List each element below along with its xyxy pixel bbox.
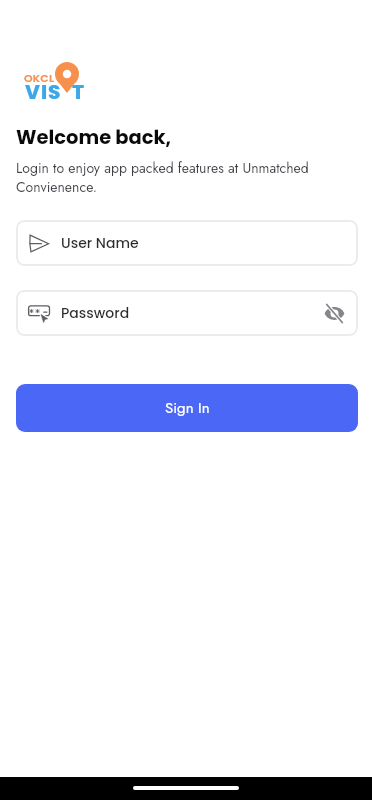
button[interactable]: Show password <box>322 301 346 325</box>
staticText: VIS <box>25 78 62 106</box>
staticText: User Name <box>61 233 139 253</box>
staticText: OKCL <box>24 70 55 85</box>
button[interactable]: Sign In <box>16 384 358 432</box>
button[interactable]: Password <box>16 290 358 336</box>
staticText: Sign In <box>165 397 210 419</box>
button[interactable]: User Name <box>16 220 358 266</box>
staticText: Login to enjoy app packed features at Un… <box>16 158 326 197</box>
staticText: T <box>72 78 85 106</box>
staticText: Welcome back, <box>16 124 172 151</box>
staticText: Password <box>61 303 130 323</box>
